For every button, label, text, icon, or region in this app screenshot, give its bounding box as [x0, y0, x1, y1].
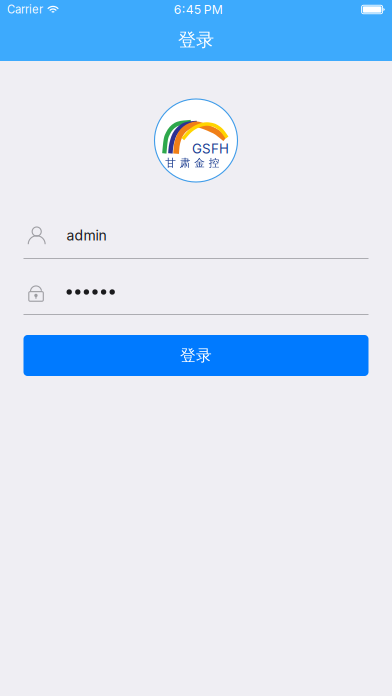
- staticText: Carrier: [7, 3, 43, 16]
- staticText: 6:45 PM: [174, 2, 223, 17]
- staticText: 登录: [180, 346, 212, 365]
- staticText: 登录: [178, 29, 214, 51]
- staticText: 甘肃金控: [165, 156, 220, 170]
- staticText: GSFH: [192, 141, 229, 157]
- button[interactable]: 登录: [23, 335, 368, 376]
- staticText: admin: [66, 227, 106, 244]
